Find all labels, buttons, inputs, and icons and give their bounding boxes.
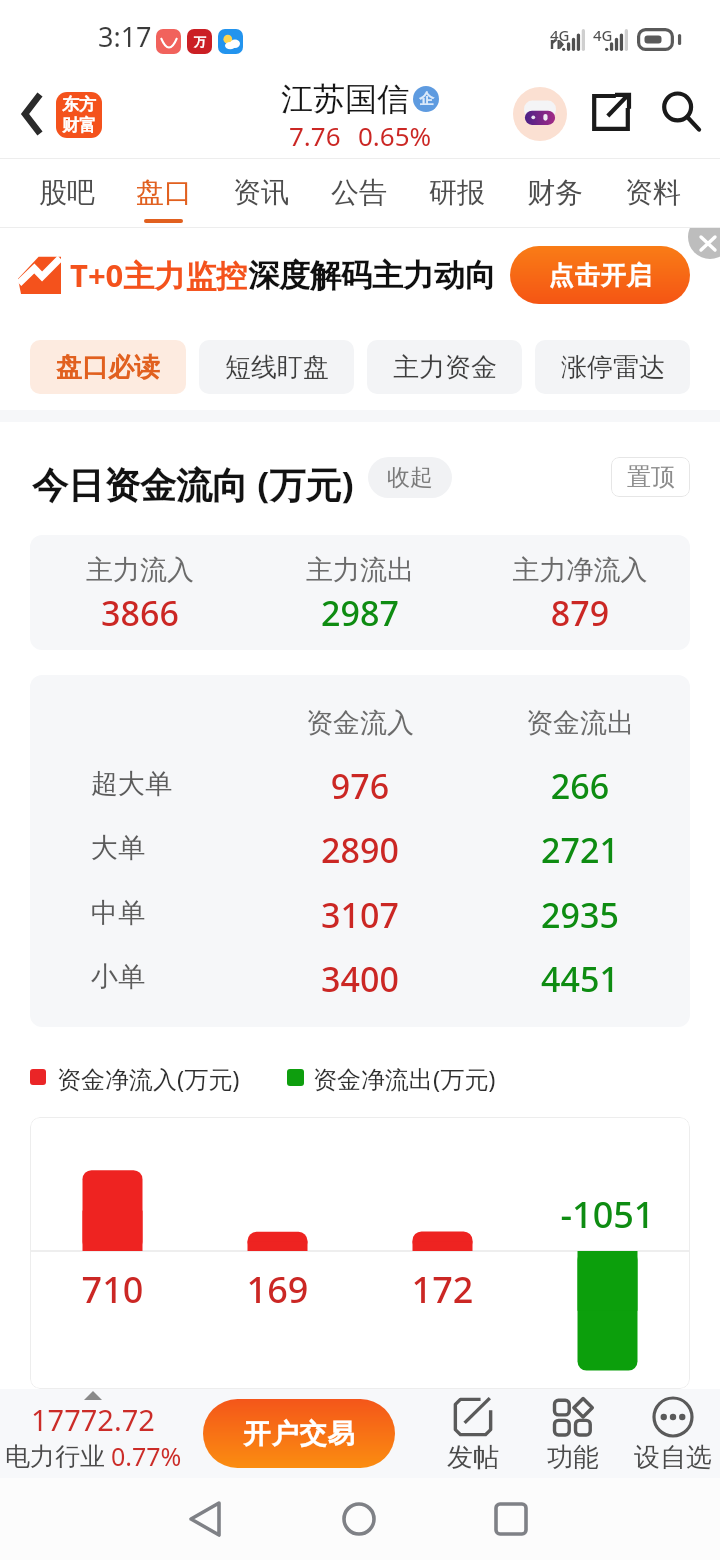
button[interactable]: 盘口必读 [30, 340, 186, 394]
staticText: 万 [194, 34, 206, 49]
staticText: 大单 [91, 831, 145, 865]
staticText: 电力行业 [5, 1441, 105, 1472]
button[interactable]: 设自选 [623, 1396, 720, 1474]
staticText: 4451 [470, 956, 690, 1002]
staticText: 中单 [91, 896, 145, 930]
button[interactable]: 17772.72 [0, 1391, 192, 1473]
staticText: 3:17 [98, 18, 152, 55]
staticText: 169 [195, 1265, 360, 1314]
button[interactable]: Close banner [688, 228, 720, 259]
staticText: 财务 [527, 175, 583, 210]
staticText: 盘口 [136, 175, 192, 210]
staticText: 资金流出 [470, 706, 690, 740]
button[interactable]: 盘口 [115, 159, 212, 227]
button[interactable]: 发帖 [423, 1396, 523, 1474]
button[interactable]: 涨停雷达 [535, 340, 690, 394]
staticText: 资金净流出(万元) [313, 1062, 496, 1092]
staticText: 收起 [387, 463, 433, 492]
staticText: 976 [250, 763, 470, 809]
staticText: 0.77% [111, 1439, 182, 1473]
button[interactable]: 置顶 [611, 457, 690, 497]
staticText: 主力流出 [250, 553, 470, 587]
staticText: 盘口必读 [56, 351, 160, 384]
staticText: 东方 [62, 94, 96, 115]
staticText: 公告 [331, 175, 387, 210]
staticText: 172 [360, 1265, 525, 1314]
button[interactable]: 点击开启 [510, 246, 690, 304]
staticText: 财富 [62, 115, 96, 136]
staticText: 4G [550, 25, 570, 45]
staticText: 资金净流入(万元) [57, 1062, 240, 1092]
staticText: 资金流入 [250, 706, 470, 740]
staticText: 17772.72 [31, 1400, 155, 1439]
button[interactable]: Search [653, 84, 709, 140]
staticText: 涨停雷达 [561, 351, 665, 384]
staticText: 今日资金流向 (万元) [32, 460, 354, 509]
button[interactable]: 开户交易 [203, 1399, 395, 1468]
staticText: 3107 [250, 892, 470, 938]
staticText: 开户交易 [243, 1417, 355, 1451]
button[interactable]: 资料 [604, 159, 702, 227]
staticText: 置顶 [627, 462, 675, 492]
staticText: 2890 [250, 827, 470, 873]
staticText: 主力流入 [30, 553, 250, 587]
staticText: 2935 [470, 892, 690, 938]
staticText: 企 [419, 90, 434, 109]
button[interactable]: Share [583, 84, 639, 140]
staticText: 主力净流入 [470, 553, 690, 587]
staticText: 短线盯盘 [225, 351, 329, 384]
staticText: 710 [30, 1265, 195, 1314]
staticText: 主力资金 [393, 351, 497, 384]
staticText: 2987 [250, 590, 470, 636]
staticText: 股吧 [39, 175, 95, 210]
staticText: 小单 [91, 960, 145, 994]
staticText: 7.76 [289, 118, 341, 153]
button[interactable]: 短线盯盘 [199, 340, 354, 394]
staticText: 3866 [30, 590, 250, 636]
staticText: 2721 [470, 827, 690, 873]
staticText: 点击开启 [548, 260, 652, 291]
staticText: 江苏国信 [281, 79, 409, 119]
button[interactable]: Home [317, 1478, 401, 1560]
staticText: 资讯 [233, 175, 289, 210]
button[interactable]: 收起 [368, 457, 452, 498]
staticText: 深度解码主力动向 [248, 256, 496, 295]
button[interactable]: East Money logo [56, 92, 102, 138]
staticText: 4G [593, 25, 613, 45]
staticText: T+0主力监控 [70, 254, 248, 296]
button[interactable]: 股吧 [18, 159, 115, 227]
button[interactable]: 公告 [310, 159, 408, 227]
button[interactable]: Recent apps [469, 1478, 553, 1560]
button[interactable]: Back [4, 85, 62, 143]
staticText: 设自选 [634, 1441, 712, 1474]
staticText: 0.65% [358, 118, 432, 153]
button[interactable]: 主力资金 [367, 340, 522, 394]
staticText: 3400 [250, 956, 470, 1002]
staticText: 超大单 [91, 767, 172, 801]
button[interactable]: 资讯 [212, 159, 310, 227]
button[interactable]: 财务 [506, 159, 604, 227]
staticText: -1051 [525, 1190, 690, 1239]
button[interactable]: 研报 [408, 159, 506, 227]
staticText: 发帖 [447, 1441, 499, 1474]
staticText: 研报 [429, 175, 485, 210]
staticText: 功能 [547, 1441, 599, 1474]
staticText: 资料 [625, 175, 681, 210]
staticText: 879 [470, 590, 690, 636]
button[interactable]: Back [163, 1478, 247, 1560]
button[interactable]: AI assistant [513, 87, 567, 141]
button[interactable]: 功能 [523, 1396, 623, 1474]
staticText: 266 [470, 763, 690, 809]
